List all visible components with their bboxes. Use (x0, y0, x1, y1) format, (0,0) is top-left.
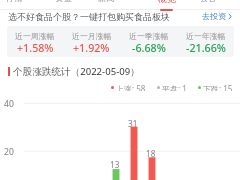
staticText: +1.58% (17, 41, 54, 56)
staticText: 近一月涨幅 (72, 31, 112, 41)
staticText: 个股涨跌统计（2022-05-09） (13, 65, 140, 77)
button[interactable]: 上涨: 58 (111, 83, 146, 91)
staticText: 选不好食品个股？一键打包购买食品板块 (8, 11, 170, 22)
button[interactable]: 行情 (0, 0, 240, 3)
staticText: 下跌: 15 (203, 83, 233, 91)
staticText: 近一年涨幅 (186, 31, 226, 41)
staticText: 新闻 (98, 0, 115, 3)
staticText: -21.66% (186, 41, 226, 56)
button[interactable]: 下跌: 15 (198, 83, 233, 91)
staticText: 上涨: 58 (116, 83, 146, 91)
staticText: 40 (4, 98, 14, 110)
staticText: 20 (4, 146, 14, 158)
staticText: 13 (110, 159, 120, 170)
staticText: 平盘: 1 (162, 83, 187, 91)
staticText: 31 (128, 118, 138, 129)
staticText: 概览 (158, 0, 176, 3)
button[interactable]: 平盘: 1 (157, 83, 187, 91)
staticText: 18 (146, 148, 156, 159)
staticText: -6.68% (132, 41, 166, 56)
button[interactable]: 选不好食品个股？一键打包购买食品板块 (0, 10, 240, 22)
staticText: 公告 (200, 0, 217, 3)
staticText: 近一周涨幅 (15, 31, 55, 41)
staticText: 去投资 (202, 11, 226, 21)
staticText: 近一季涨幅 (129, 31, 169, 41)
staticText: 行情 (6, 0, 23, 3)
staticText: +1.92% (73, 41, 110, 56)
staticText: 资金 (55, 0, 72, 3)
